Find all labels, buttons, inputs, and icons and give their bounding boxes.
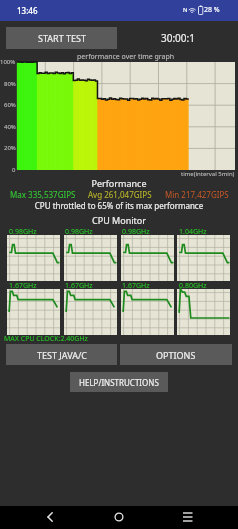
staticText: HELP/INSTRUCTIONS [79,377,159,388]
staticText: 60% [4,101,16,109]
staticText: N [183,6,188,14]
staticText: 0.98GHz [122,227,150,237]
staticText: Min 217,427GIPS [165,189,229,200]
staticText: time(interval 5min) [181,170,235,178]
staticText: MAX CPU CLOCK:2.40GHz [4,334,88,344]
staticText: Max 335,537GIPS [10,189,76,200]
staticText: 80% [4,80,16,88]
button[interactable]: Recents [176,506,200,529]
staticText: 40% [4,123,16,131]
staticText: CPU Monitor [0,214,238,226]
staticText: 30:00:1 [161,31,195,45]
staticText: 100% [0,58,16,66]
staticText: 0.98GHz [65,227,93,237]
staticText: CPU throttled to 65% of its max performa… [0,200,238,211]
staticText: 28 % [204,5,220,15]
staticText: Avg 261,047GIPS [88,189,152,200]
button[interactable]: HELP/INSTRUCTIONS [70,372,168,392]
staticText: 0.80GHz [179,281,207,291]
button[interactable]: Back [38,506,62,529]
button[interactable]: START TEST [6,27,117,49]
staticText: 1.67GHz [122,281,150,291]
staticText: 1.67GHz [9,281,37,291]
staticText: 0.98GHz [9,227,37,237]
button[interactable]: OPTIONS [120,344,232,365]
staticText: 1.67GHz [65,281,93,291]
staticText: Performance [0,177,238,189]
staticText: 13:46 [17,5,38,16]
staticText: 0 [12,166,16,174]
staticText: 20% [4,144,16,152]
button[interactable]: TEST JAVA/C [6,344,117,365]
staticText: 1.04GHz [179,227,207,237]
staticText: TEST JAVA/C [37,349,87,361]
staticText: START TEST [38,32,86,44]
staticText: performance over time graph [77,52,175,62]
staticText: OPTIONS [156,349,196,361]
button[interactable]: Home [107,506,131,529]
